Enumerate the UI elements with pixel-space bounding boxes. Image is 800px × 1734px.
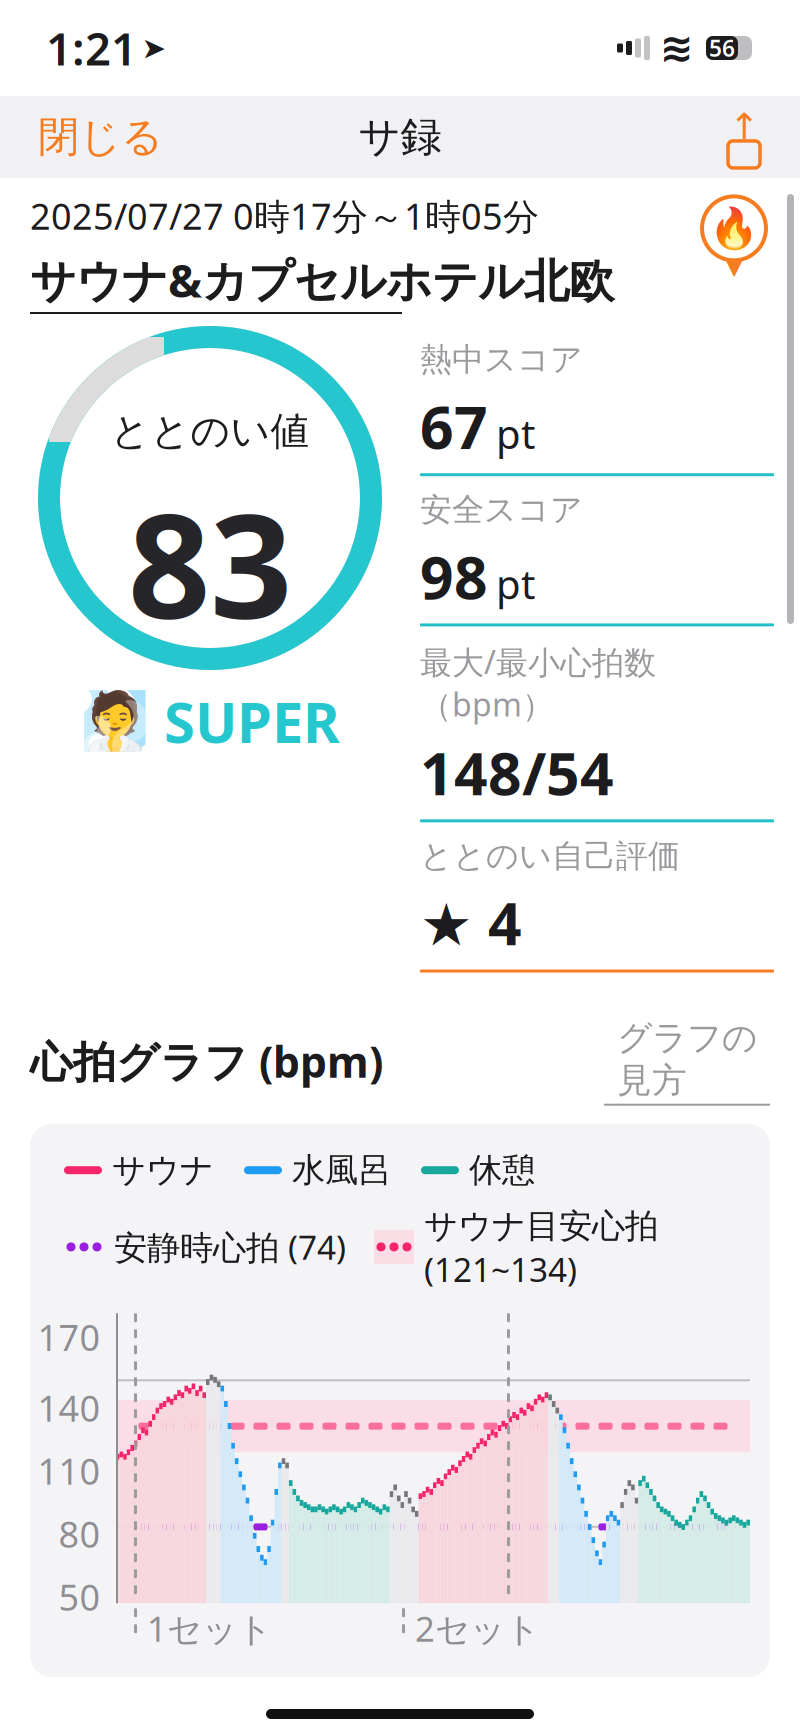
staticText: 110 [37,1447,100,1495]
staticText: 2セット [415,1605,540,1651]
staticText: 安静時心拍 (74) [114,1225,346,1269]
staticText: 休憩 [469,1150,535,1191]
staticText: サウナ&カプセルホテル北欧 [30,250,614,310]
staticText: 83 [128,467,292,658]
staticText: 56 [709,33,735,63]
button[interactable]: サウナ&カプセルホテル北欧 [30,250,614,314]
staticText: ≋ [660,25,694,71]
staticText: サウナ [112,1150,214,1191]
staticText: ととのい値 [110,408,309,455]
staticText: 1:21 [46,18,137,78]
staticText: 148/54 [420,733,614,811]
staticText: ➤ [141,31,166,65]
staticText: 安全スコア [420,490,583,529]
staticText: 98 [420,537,488,615]
staticText: 熱中スコア [420,340,583,379]
staticText: 2025/07/27 0時17分～1時05分 [30,192,539,240]
staticText: ととのい自己評価 [420,836,680,876]
button[interactable]: 共有 [718,109,770,165]
staticText: 170 [37,1313,100,1361]
button[interactable]: ととのい自己評価 [420,836,774,986]
staticText: ↑ [729,106,759,147]
staticText: 🔥 [709,205,759,251]
staticText: 140 [37,1384,100,1432]
staticText: pt [496,407,535,460]
staticText: 心拍グラフ (bpm) [30,1033,383,1089]
staticText: 水風呂 [292,1150,391,1191]
staticText: サウナ目安心拍 (121~134) [424,1203,658,1291]
staticText: 🧖 [80,689,150,753]
staticText: pt [496,557,535,610]
button[interactable]: 閉じる [30,102,171,172]
staticText: ▼ [725,252,743,280]
staticText: 1セット [147,1605,272,1651]
staticText: 67 [420,387,488,465]
staticText: ★ 4 [420,884,522,961]
button[interactable]: グラフの見方 [604,1016,770,1106]
staticText: グラフの見方 [617,1016,757,1102]
staticText: 50 [58,1573,100,1621]
staticText: サ録 [358,112,441,162]
staticText: 80 [58,1510,100,1558]
staticText: SUPER [164,684,340,758]
staticText: 閉じる [38,112,163,162]
staticText: 最大/最小心拍数（bpm） [420,640,656,725]
